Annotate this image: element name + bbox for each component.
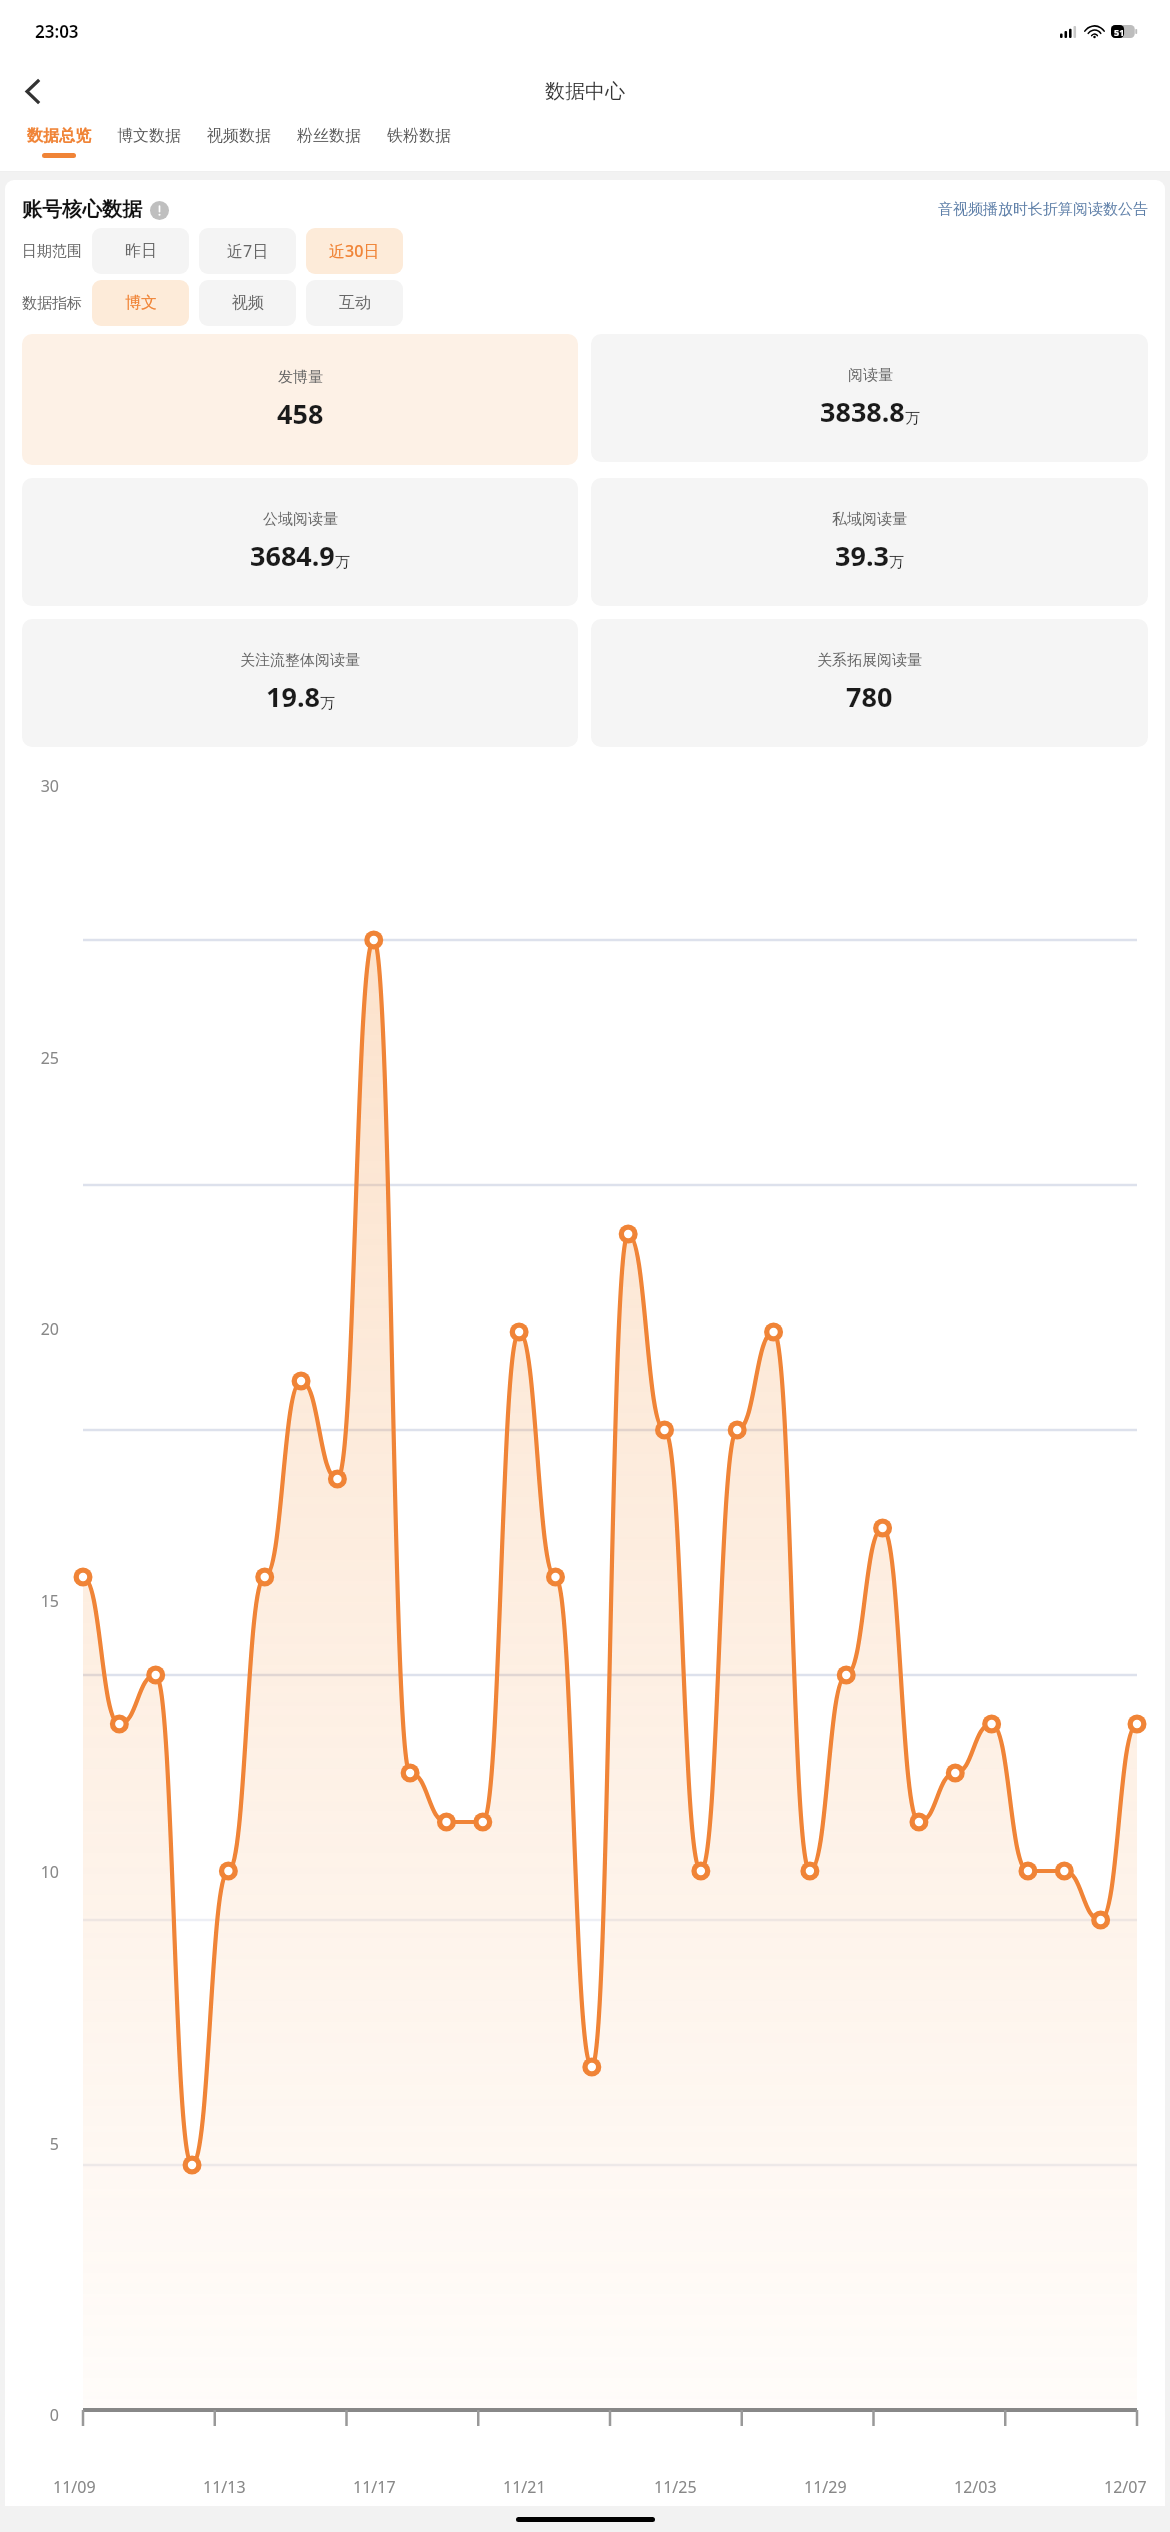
staticText: 3838.8 (820, 393, 905, 430)
staticText: 关系拓展阅读量 (817, 651, 922, 670)
button[interactable]: 音视频播放时长折算阅读数公告 (938, 200, 1148, 219)
staticText: 万 (889, 553, 904, 572)
staticText: 数据总览 (27, 126, 91, 146)
staticText: 5 (25, 2133, 59, 2155)
staticText: 视频 (232, 293, 264, 313)
staticText: 博文数据 (117, 126, 181, 146)
staticText: 日期范围 (22, 242, 82, 261)
staticText: 阅读量 (848, 366, 893, 385)
button[interactable]: 视频 (199, 280, 296, 326)
button[interactable]: 昨日 (92, 228, 189, 274)
staticText: 51 (1114, 26, 1125, 38)
staticText: 19.8 (266, 678, 320, 715)
staticText: 粉丝数据 (297, 126, 361, 146)
staticText: 账号核心数据 (22, 197, 142, 222)
staticText: 25 (25, 1047, 59, 1069)
staticText: 10 (25, 1861, 59, 1883)
staticText: 11/13 (203, 2476, 246, 2498)
button[interactable]: 数据总览 (27, 120, 91, 172)
button[interactable]: 博文 (92, 280, 189, 326)
staticText: 3684.9 (250, 537, 335, 574)
staticText: 私域阅读量 (832, 510, 907, 529)
staticText: 公域阅读量 (263, 510, 338, 529)
staticText: 15 (25, 1590, 59, 1612)
staticText: 30 (25, 775, 59, 797)
staticText: 数据指标 (22, 294, 82, 313)
staticText: 458 (277, 395, 324, 432)
staticText: 0 (25, 2404, 59, 2426)
button[interactable]: 粉丝数据 (297, 120, 361, 172)
button[interactable]: 公域阅读量 (22, 478, 578, 606)
staticText: 39.3 (835, 537, 889, 574)
button[interactable]: 视频数据 (207, 120, 271, 172)
button[interactable]: 铁粉数据 (387, 120, 451, 172)
button[interactable]: 发博量 (22, 334, 578, 465)
button[interactable]: 互动 (306, 280, 403, 326)
staticText: 12/03 (954, 2476, 997, 2498)
button[interactable]: Back (10, 69, 54, 113)
staticText: 23:03 (35, 20, 79, 43)
staticText: 万 (335, 553, 350, 572)
staticText: 20 (25, 1318, 59, 1340)
staticText: 数据中心 (545, 79, 625, 104)
staticText: 11/29 (804, 2476, 847, 2498)
staticText: 视频数据 (207, 126, 271, 146)
staticText: 780 (846, 678, 893, 715)
staticText: 铁粉数据 (387, 126, 451, 146)
staticText: 11/17 (353, 2476, 396, 2498)
button[interactable]: 近7日 (199, 228, 296, 274)
staticText: 11/09 (53, 2476, 96, 2498)
button[interactable]: 私域阅读量 (591, 478, 1148, 606)
staticText: 万 (320, 694, 335, 713)
staticText: 昨日 (125, 241, 157, 261)
staticText: 万 (905, 409, 920, 428)
staticText: 近7日 (227, 240, 269, 262)
staticText: 近30日 (329, 240, 380, 262)
button[interactable]: 阅读量 (591, 334, 1148, 462)
staticText: 发博量 (278, 368, 323, 387)
staticText: 博文 (125, 293, 157, 313)
button[interactable]: Info (149, 200, 169, 220)
button[interactable]: 博文数据 (117, 120, 181, 172)
button[interactable]: 近30日 (306, 228, 403, 274)
button[interactable]: 关注流整体阅读量 (22, 619, 578, 747)
staticText: 11/25 (654, 2476, 697, 2498)
staticText: 11/21 (503, 2476, 546, 2498)
staticText: 12/07 (1104, 2476, 1147, 2498)
staticText: 关注流整体阅读量 (240, 651, 360, 670)
staticText: 互动 (339, 293, 371, 313)
button[interactable]: 关系拓展阅读量 (591, 619, 1148, 747)
staticText: 音视频播放时长折算阅读数公告 (938, 200, 1148, 219)
